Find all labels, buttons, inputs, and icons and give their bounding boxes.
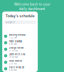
staticText: Design review xyxy=(9,46,24,49)
staticText: Morning workout xyxy=(9,33,26,36)
staticText: 7:00 AM xyxy=(9,36,17,39)
staticText: 9:30 AM xyxy=(9,43,17,46)
staticText: Team standup xyxy=(9,40,22,43)
button[interactable]: Team standup xyxy=(2,39,38,46)
staticText: 11:00 AM xyxy=(9,49,18,52)
staticText: 2:00 PM xyxy=(9,62,17,65)
staticText: Search xyxy=(5,21,15,24)
staticText: daily dashboard xyxy=(19,7,45,11)
button[interactable]: Morning workout xyxy=(2,33,38,39)
button[interactable]: Search xyxy=(2,18,38,24)
staticText: 5:00 PM xyxy=(9,69,17,72)
button[interactable]: Focus session xyxy=(2,59,38,65)
staticText: Welcome back to your xyxy=(14,2,50,6)
button[interactable]: Lunch with Ana xyxy=(2,52,38,59)
staticText: Lunch with Ana xyxy=(9,53,25,56)
staticText: Focus session xyxy=(9,59,22,62)
staticText: Daily wrap up xyxy=(9,66,24,69)
staticText: 12:30 PM xyxy=(9,56,18,59)
button[interactable]: Design review xyxy=(2,46,38,52)
staticText: Today's schedule xyxy=(5,14,34,18)
button[interactable]: Daily wrap up xyxy=(2,65,38,72)
